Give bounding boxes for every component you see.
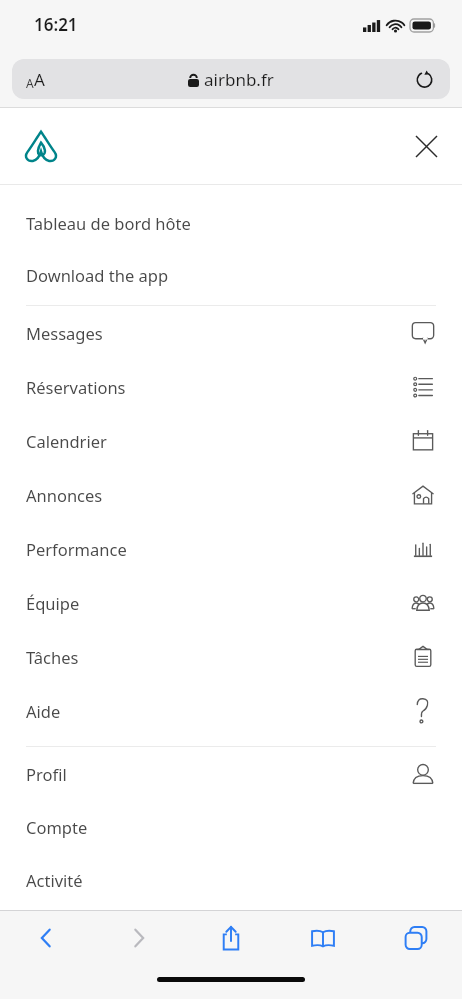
button[interactable]: Tabs xyxy=(389,911,443,965)
staticText: Compte xyxy=(26,816,88,838)
button[interactable]: Aide xyxy=(0,684,462,738)
button[interactable]: Messages xyxy=(0,306,462,360)
button[interactable]: Close menu xyxy=(404,124,448,168)
staticText: Calendrier xyxy=(26,430,107,452)
button[interactable]: Share xyxy=(204,911,258,965)
staticText: Download the app xyxy=(26,264,169,286)
staticText: A xyxy=(34,68,45,91)
button[interactable]: Activité xyxy=(0,853,462,906)
staticText: Annonces xyxy=(26,484,103,506)
staticText: Activité xyxy=(26,869,83,891)
button[interactable]: Tâches xyxy=(0,630,462,684)
staticText: Messages xyxy=(26,322,103,344)
button[interactable]: Reload xyxy=(408,63,440,95)
button[interactable]: Back xyxy=(19,911,73,965)
staticText: Aide xyxy=(26,700,61,722)
button[interactable]: Profil xyxy=(0,747,462,800)
button[interactable]: Annonces xyxy=(0,468,462,522)
button[interactable]: Compte xyxy=(0,800,462,853)
staticText: Performance xyxy=(26,538,127,560)
button[interactable]: Airbnb home xyxy=(18,123,64,169)
button[interactable]: Bookmarks xyxy=(296,911,350,965)
button[interactable]: Performance xyxy=(0,522,462,576)
staticText: Profil xyxy=(26,763,67,785)
button[interactable]: Réservations xyxy=(0,360,462,414)
staticText: A xyxy=(26,75,34,91)
button[interactable]: Download the app xyxy=(0,249,462,301)
button[interactable]: Forward xyxy=(112,911,166,965)
button[interactable]: Calendrier xyxy=(0,414,462,468)
button[interactable]: Page settings xyxy=(26,68,45,91)
staticText: 16:21 xyxy=(34,13,78,36)
button[interactable]: Équipe xyxy=(0,576,462,630)
button[interactable]: Tableau de bord hôte xyxy=(0,197,462,249)
staticText: Tâches xyxy=(26,646,79,668)
staticText: Réservations xyxy=(26,376,126,398)
staticText: Équipe xyxy=(26,592,80,614)
staticText: airbnb.fr xyxy=(204,68,274,91)
staticText: Tableau de bord hôte xyxy=(26,212,191,234)
button[interactable]: Page settings xyxy=(12,59,450,99)
